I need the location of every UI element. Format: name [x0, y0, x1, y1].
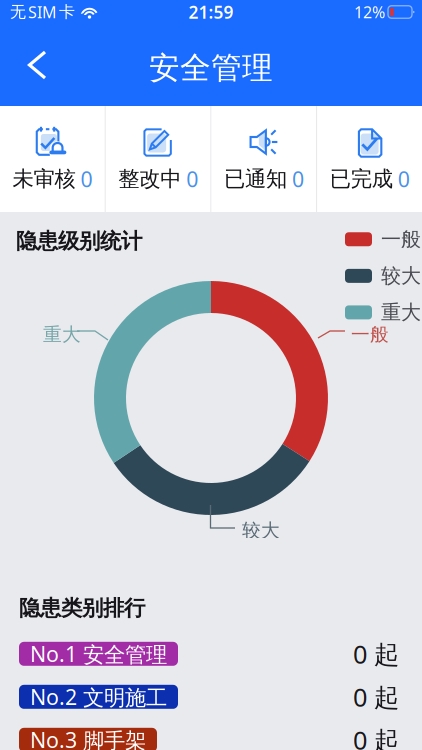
staticText: 一般	[381, 227, 421, 252]
staticText: 一般	[351, 323, 389, 346]
staticText: 0	[398, 165, 410, 193]
staticText: No.1 安全管理	[30, 640, 167, 668]
button[interactable]: No.2 文明施工	[0, 680, 422, 714]
staticText: 0	[186, 165, 198, 193]
staticText: 较大	[381, 264, 421, 288]
staticText: 较大	[242, 519, 280, 542]
staticText: 安全管理	[149, 49, 273, 87]
staticText: 0	[292, 165, 304, 193]
staticText: 无	[10, 2, 26, 22]
staticText: 未审核	[12, 166, 75, 192]
staticText: 卡	[59, 2, 75, 22]
button[interactable]: 已通知	[211, 106, 316, 212]
button[interactable]: 整改中	[106, 106, 211, 212]
button[interactable]: No.1 安全管理	[0, 637, 422, 671]
staticText: No.3 脚手架	[30, 726, 146, 750]
staticText: 重大	[381, 300, 421, 325]
staticText: 0 起	[353, 723, 399, 750]
button[interactable]: No.3 脚手架	[0, 723, 422, 750]
staticText: 隐患级别统计	[16, 228, 142, 254]
button[interactable]: Back	[0, 30, 63, 99]
staticText: 已通知	[224, 166, 287, 192]
staticText: 整改中	[118, 166, 181, 192]
staticText: SIM	[28, 1, 57, 23]
staticText: 21:59	[188, 0, 233, 23]
staticText: 0	[80, 165, 92, 193]
staticText: 0 起	[353, 637, 399, 671]
button[interactable]: 未审核	[0, 106, 105, 212]
staticText: 已完成	[330, 166, 393, 192]
button[interactable]: 已完成	[317, 106, 422, 212]
staticText: 隐患类别排行	[19, 595, 145, 621]
staticText: 重大	[43, 323, 81, 346]
staticText: 12%	[354, 1, 385, 23]
staticText: No.2 文明施工	[30, 683, 167, 711]
staticText: 0 起	[353, 680, 399, 714]
